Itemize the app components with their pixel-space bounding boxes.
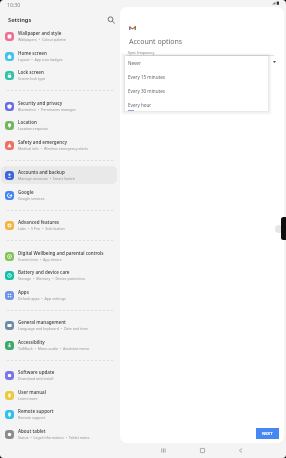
button[interactable]: Every hour <box>125 98 268 111</box>
staticText: Home screen <box>18 50 47 56</box>
button[interactable]: Back <box>235 445 246 456</box>
staticText: Learn more <box>18 396 38 401</box>
button[interactable]: Home screen <box>1 47 117 65</box>
button[interactable]: Advanced features <box>1 216 117 234</box>
button[interactable]: About tablet <box>1 425 117 443</box>
staticText: Medical info • Wireless emergency alerts <box>18 146 88 151</box>
staticText: Google <box>18 189 34 195</box>
button[interactable]: User manual <box>1 386 117 404</box>
staticText: Labs • S Pen • Side button <box>18 226 65 231</box>
staticText: General management <box>18 319 66 325</box>
button[interactable]: Digital Wellbeing and parental controls <box>1 247 117 265</box>
staticText: Google services <box>18 196 45 201</box>
button[interactable]: Lock screen <box>1 66 117 84</box>
button[interactable]: Location <box>1 116 117 134</box>
staticText: NEXT <box>262 431 273 437</box>
staticText: Advanced features <box>18 219 60 225</box>
button[interactable]: Apps <box>1 286 117 304</box>
staticText: Biometrics • Permission manager <box>18 107 77 112</box>
staticText: Every hour <box>128 102 152 108</box>
button[interactable]: Battery and device care <box>1 266 117 284</box>
button[interactable]: Search <box>105 14 117 26</box>
staticText: Every 15 minutes <box>128 74 165 80</box>
staticText: Default apps • App settings <box>18 296 66 301</box>
button[interactable]: Every 15 minutes <box>125 70 268 84</box>
staticText: Storage • Memory • Device protection <box>18 276 85 281</box>
staticText: Accessibility <box>18 339 45 345</box>
button[interactable]: Accessibility <box>1 336 117 354</box>
staticText: Download and install <box>18 376 54 381</box>
button[interactable]: Accounts and backup <box>1 166 117 184</box>
button[interactable]: Security and privacy <box>1 97 117 115</box>
staticText: Security and privacy <box>18 100 63 106</box>
staticText: Account options <box>129 37 183 47</box>
staticText: Settings <box>8 16 32 24</box>
staticText: Language and keyboard • Date and time <box>18 326 88 331</box>
staticText: Location <box>18 119 37 125</box>
button[interactable]: Google <box>1 186 117 204</box>
staticText: Remote support <box>18 415 46 420</box>
button[interactable]: Wallpaper and style <box>1 27 117 45</box>
button[interactable]: Software update <box>1 366 117 384</box>
staticText: Location requests <box>18 126 48 131</box>
button[interactable]: Every 30 minutes <box>125 84 268 98</box>
staticText: Every 30 minutes <box>128 88 165 94</box>
button[interactable]: Home <box>197 445 208 456</box>
button[interactable]: NEXT <box>256 428 279 439</box>
staticText: Battery and device care <box>18 269 70 275</box>
staticText: Remote support <box>18 408 54 414</box>
staticText: Digital Wellbeing and parental controls <box>18 250 104 256</box>
staticText: TalkBack • Mono audio • Assistant menu <box>18 346 90 351</box>
staticText: User manual <box>18 389 46 395</box>
staticText: Accounts and backup <box>18 169 65 175</box>
button[interactable]: Recents <box>158 445 169 456</box>
button[interactable]: Safety and emergency <box>1 136 117 154</box>
staticText: Layout • App icon badges <box>18 57 63 62</box>
button[interactable]: General management <box>1 316 117 334</box>
button[interactable]: Never <box>125 56 268 70</box>
staticText: Screen time • App timers <box>18 257 62 262</box>
staticText: Manage accounts • Smart Switch <box>18 176 75 181</box>
staticText: Lock screen <box>18 69 44 75</box>
staticText: Sync frequency <box>128 50 155 55</box>
staticText: Software update <box>18 369 55 375</box>
staticText: Apps <box>18 289 29 295</box>
button[interactable]: Remote support <box>1 405 117 423</box>
staticText: Safety and emergency <box>18 139 67 145</box>
staticText: Wallpaper and style <box>18 30 62 36</box>
staticText: Never <box>128 60 141 66</box>
staticText: 10:30 <box>7 1 21 8</box>
staticText: Wallpapers • Colour palette <box>18 37 66 42</box>
staticText: Screen lock type <box>18 76 46 81</box>
staticText: Status • Legal information • Tablet name <box>18 435 90 440</box>
staticText: About tablet <box>18 428 46 434</box>
